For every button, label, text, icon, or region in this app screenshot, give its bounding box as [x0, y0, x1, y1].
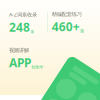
staticText: 条 [30, 29, 34, 34]
staticText: 248 [9, 19, 30, 35]
staticText: 460+ [52, 19, 80, 34]
staticText: APP [9, 55, 31, 70]
staticText: 精编配套练习 [52, 11, 82, 18]
staticText: 智能学 [31, 65, 43, 69]
staticText: 题 [80, 29, 84, 33]
staticText: 视频讲解 [9, 47, 29, 54]
staticText: A-Z词条收录 [9, 11, 37, 18]
